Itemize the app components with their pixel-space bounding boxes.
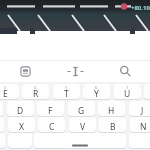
button[interactable]: 5 [53, 84, 80, 99]
button[interactable]: G [68, 101, 95, 116]
staticText: G [78, 105, 85, 116]
staticText: U [124, 88, 131, 99]
staticText: 7 [126, 85, 129, 90]
staticText: X [19, 121, 24, 132]
button[interactable]: X [8, 117, 35, 132]
staticText: E [3, 88, 8, 99]
button[interactable]: 3 [0, 84, 19, 99]
staticText: V [80, 121, 86, 132]
button[interactable]: 6 [83, 84, 110, 99]
staticText: D [17, 105, 24, 116]
button[interactable]: 7 [114, 84, 141, 99]
staticText: 5 [65, 85, 68, 90]
staticText: +80.100 [131, 4, 150, 12]
button[interactable] [34, 133, 126, 148]
staticText: B [110, 121, 116, 132]
button[interactable]: Stickers [0, 60, 50, 82]
button[interactable]: B [99, 117, 126, 132]
staticText: J [141, 105, 144, 116]
button[interactable] [0, 133, 5, 148]
button[interactable]: H [98, 101, 125, 116]
staticText: R [33, 88, 39, 99]
staticText: 4 [34, 85, 37, 90]
button[interactable]: D [7, 101, 34, 116]
button[interactable]: S [0, 101, 3, 116]
staticText: Y [94, 88, 99, 99]
button[interactable]: Search [100, 60, 150, 82]
button[interactable]: C [38, 117, 65, 132]
button[interactable]: Move cursor [50, 60, 100, 82]
button[interactable]: 4 [22, 84, 49, 99]
button[interactable]: Z [0, 117, 4, 132]
staticText: T [64, 88, 69, 99]
button[interactable]: 8 [144, 84, 150, 99]
staticText: N [140, 121, 147, 132]
button[interactable]: N [130, 117, 150, 132]
button[interactable]: V [69, 117, 96, 132]
staticText: 6 [95, 85, 98, 90]
staticText: F [48, 105, 53, 116]
staticText: H [108, 105, 115, 116]
button[interactable]: F [37, 101, 64, 116]
staticText: 3 [4, 85, 7, 90]
staticText: C [49, 121, 55, 132]
button[interactable]: J [129, 101, 150, 116]
